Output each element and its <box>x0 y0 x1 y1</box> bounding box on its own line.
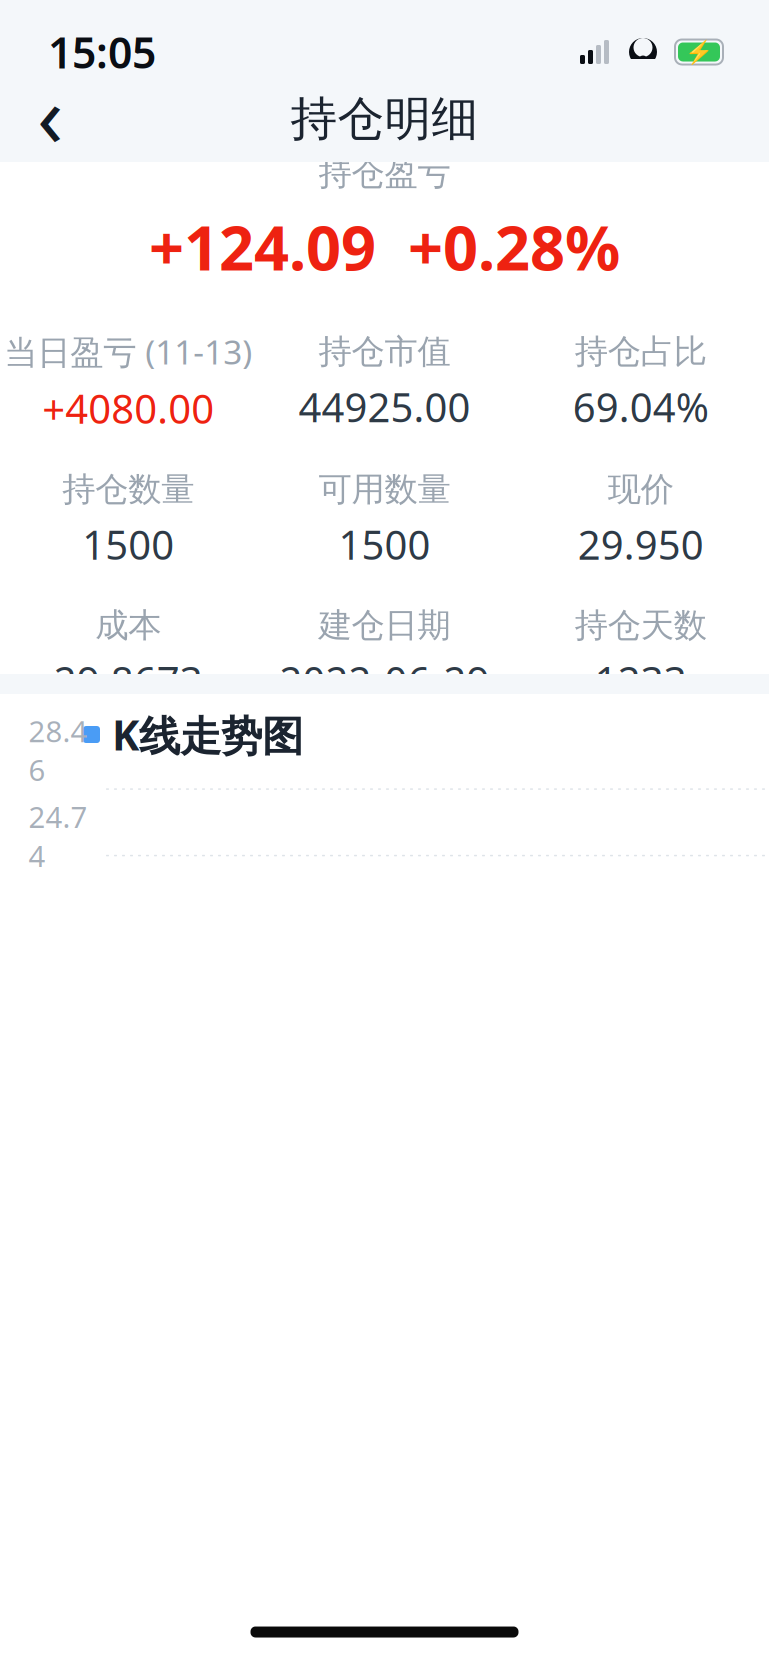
staticText: 28.46 <box>28 711 87 789</box>
staticText: 当日盈亏 (11-13) <box>4 329 252 374</box>
staticText: 持仓天数 <box>575 605 707 646</box>
staticText: 持仓占比 <box>575 331 707 372</box>
staticText: 1500 <box>82 518 174 571</box>
staticText: 持仓市值 <box>318 331 450 372</box>
staticText: 可用数量 <box>318 469 450 510</box>
staticText: 持仓数量 <box>62 469 194 510</box>
staticText: +124.09 +0.28% <box>149 206 620 287</box>
staticText: 成本 <box>95 605 161 646</box>
staticText: 持仓盈亏 <box>318 153 450 194</box>
staticText: 29.950 <box>578 518 704 571</box>
staticText: K线走势图 <box>112 707 303 762</box>
staticText: ‹ <box>37 57 63 171</box>
staticText: 建仓日期 <box>318 605 450 646</box>
staticText: 69.04% <box>573 380 709 433</box>
staticText: ⚡ <box>685 39 713 65</box>
staticText: 44925.00 <box>298 380 470 433</box>
staticText: 1500 <box>338 518 430 571</box>
staticText: +4080.00 <box>42 382 214 435</box>
staticText: 15:05 <box>48 24 156 80</box>
button[interactable]: 返回 <box>12 81 88 157</box>
staticText: 现价 <box>608 469 674 510</box>
staticText: 1233 <box>595 654 687 707</box>
staticText: 29.8673 <box>54 654 203 707</box>
staticText: 持仓明细 <box>290 90 478 148</box>
staticText: 24.74 <box>28 797 87 875</box>
staticText: 2022-06-29 <box>279 654 489 707</box>
